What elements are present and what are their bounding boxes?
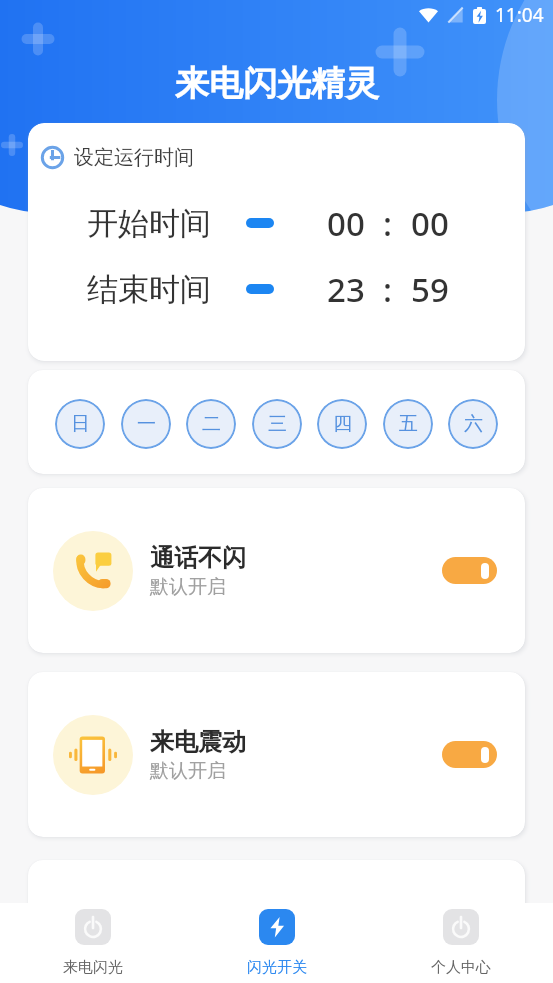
staticText: 开始时间: [87, 204, 211, 243]
button[interactable]: 来电震动: [28, 672, 525, 837]
staticText: :: [383, 267, 392, 312]
staticText: 结束时间: [87, 270, 211, 309]
button[interactable]: 一: [121, 399, 171, 449]
staticText: 来电震动: [150, 727, 246, 757]
staticText: 闪光开关: [247, 958, 307, 977]
button[interactable]: 六: [448, 399, 498, 449]
button[interactable]: 通话不闪: [28, 488, 525, 653]
button[interactable]: 个人中心: [369, 903, 553, 977]
staticText: 来电闪光: [63, 958, 123, 977]
staticText: 00: [327, 201, 365, 246]
staticText: 11:04: [495, 2, 544, 28]
button[interactable]: 五: [383, 399, 433, 449]
staticText: 五: [399, 412, 418, 436]
staticText: 一: [137, 412, 156, 436]
staticText: 设定运行时间: [74, 145, 194, 170]
button[interactable]: Toggle: [442, 741, 497, 768]
staticText: :: [383, 201, 392, 246]
staticText: 来电闪光精灵: [175, 62, 379, 105]
staticText: 二: [202, 412, 221, 436]
staticText: 23: [327, 267, 365, 312]
button[interactable]: 二: [186, 399, 236, 449]
button[interactable]: 来电闪光: [0, 903, 185, 977]
staticText: 日: [71, 412, 90, 436]
staticText: 默认开启: [150, 759, 226, 783]
staticText: 00: [411, 201, 449, 246]
staticText: 59: [411, 267, 449, 312]
staticText: 四: [333, 412, 352, 436]
staticText: 三: [268, 412, 287, 436]
button[interactable]: 三: [252, 399, 302, 449]
staticText: 六: [464, 412, 483, 436]
staticText: 通话不闪: [150, 543, 246, 573]
staticText: 个人中心: [431, 958, 491, 977]
button[interactable]: 日: [55, 399, 105, 449]
button[interactable]: Toggle: [442, 557, 497, 584]
button[interactable]: 四: [317, 399, 367, 449]
staticText: 默认开启: [150, 575, 226, 599]
button[interactable]: 闪光开关: [185, 903, 369, 977]
